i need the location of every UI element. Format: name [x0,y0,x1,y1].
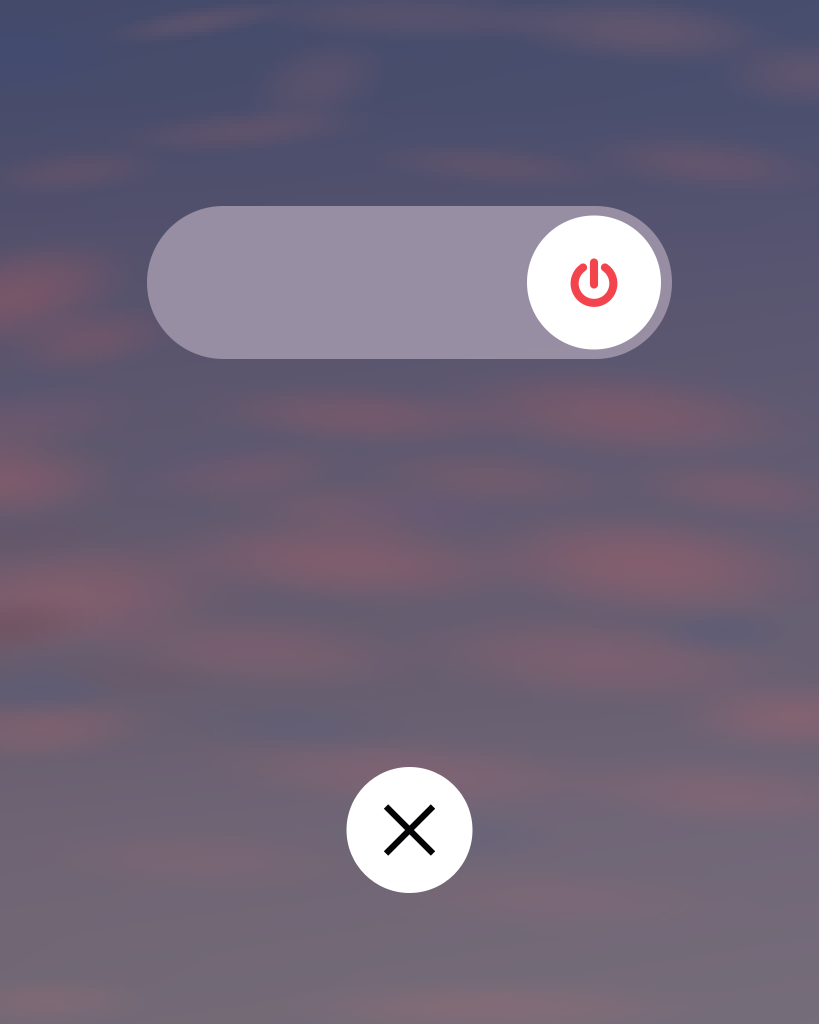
button[interactable]: Slide to power off [147,206,672,359]
button[interactable]: Cancel [346,767,472,893]
